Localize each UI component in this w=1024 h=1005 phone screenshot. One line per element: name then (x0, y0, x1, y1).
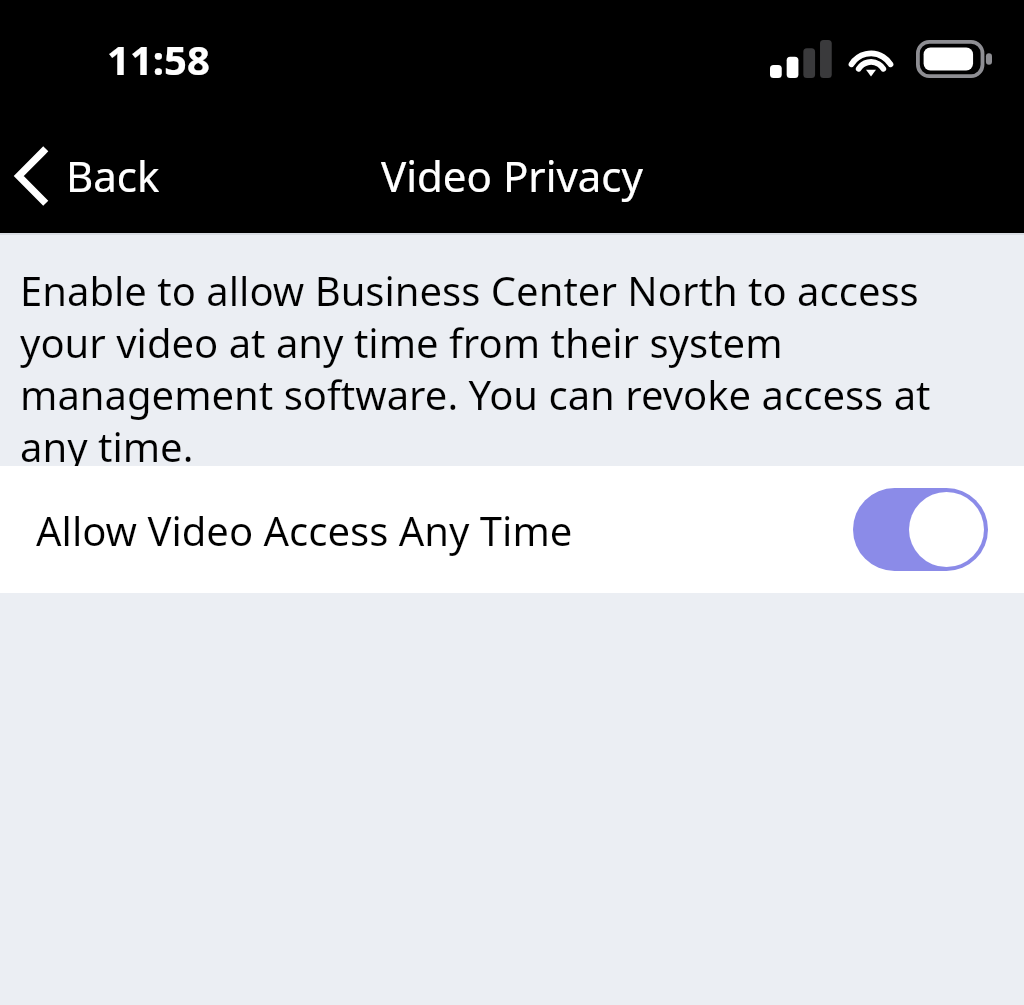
button[interactable]: Allow Video Access Any Time toggle, on (853, 488, 988, 571)
button[interactable]: Back (0, 137, 180, 214)
staticText: 11:58 (107, 32, 210, 86)
staticText: Allow Video Access Any Time (36, 503, 853, 557)
staticText: Back (66, 147, 160, 204)
staticText: Video Privacy (381, 147, 643, 204)
button[interactable]: Allow Video Access Any Time (0, 466, 1024, 593)
staticText: Enable to allow Business Center North to… (20, 263, 1002, 466)
